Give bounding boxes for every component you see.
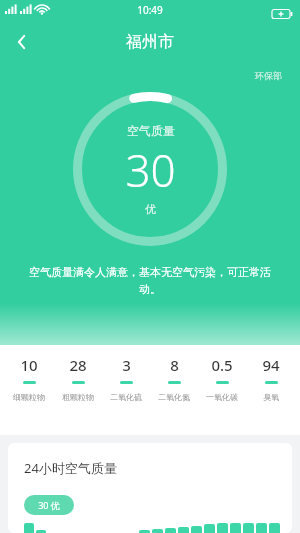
button[interactable]: 10 — [6, 355, 52, 402]
button[interactable]: 24小时空气质量 — [8, 443, 292, 533]
button[interactable]: 3 — [103, 355, 149, 402]
staticText: 8 — [170, 355, 179, 375]
button[interactable]: Back — [0, 20, 44, 64]
button[interactable]: 30 优 — [38, 499, 60, 511]
staticText: 二氧化硫 — [110, 392, 142, 402]
staticText: 10 — [20, 355, 38, 375]
staticText: 空气质量满令人满意，基本无空气污染，可正常活动。 — [26, 265, 274, 296]
staticText: 0.5 — [211, 355, 233, 375]
button[interactable]: 0.5 — [199, 355, 245, 402]
staticText: 空气质量 — [127, 123, 175, 138]
staticText: 环保部 — [255, 70, 282, 81]
staticText: 30 — [125, 140, 176, 200]
staticText: 福州市 — [126, 32, 174, 52]
button[interactable]: 环保部 — [255, 70, 282, 81]
staticText: 一氧化碳 — [206, 392, 238, 402]
staticText: 二氧化氮 — [158, 392, 190, 402]
staticText: 28 — [69, 355, 87, 375]
staticText: 优 — [145, 202, 156, 216]
staticText: 30 优 — [38, 499, 60, 511]
staticText: 10:49 — [137, 3, 163, 17]
button[interactable]: 28 — [55, 355, 101, 402]
staticText: 94 — [262, 355, 280, 375]
staticText: 臭氧 — [263, 392, 279, 402]
button[interactable]: 94 — [248, 355, 294, 402]
staticText: 24小时空气质量 — [24, 459, 117, 477]
staticText: 3 — [122, 355, 131, 375]
staticText: 粗颗粒物 — [62, 392, 94, 402]
button[interactable]: 8 — [151, 355, 197, 402]
staticText: 细颗粒物 — [13, 392, 45, 402]
